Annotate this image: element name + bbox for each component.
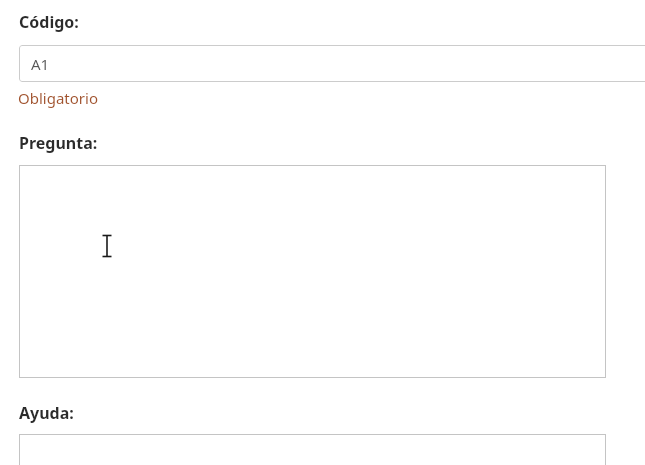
button[interactable] [19, 165, 606, 378]
other: Text cursor [100, 234, 114, 258]
staticText: Código: [19, 11, 79, 33]
staticText: Obligatorio [18, 88, 98, 108]
staticText: Pregunta: [19, 132, 98, 154]
staticText: Ayuda: [19, 402, 74, 424]
staticText: A1 [31, 54, 50, 74]
button[interactable] [19, 434, 606, 465]
button[interactable]: A1 [19, 45, 645, 82]
